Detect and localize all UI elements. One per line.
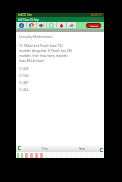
staticText: 536 <box>23 74 29 78</box>
staticText: Prev <box>42 147 48 151</box>
staticText: Everyday Mathematics <box>19 35 53 39</box>
button[interactable]: Bookmark <box>57 22 66 28</box>
staticText: 487 <box>23 81 29 85</box>
staticText: Self Class 15 Step <box>18 18 40 22</box>
button[interactable]: Menu <box>18 146 21 150</box>
staticText: 15. Mikail and Prachi have 732 marbles a… <box>19 44 75 63</box>
button[interactable]: Submit <box>86 23 101 28</box>
staticText: NOW SY <box>91 13 102 17</box>
button[interactable]: Prev <box>39 145 51 152</box>
button[interactable]: 487 <box>16 79 104 86</box>
staticText: Next <box>79 147 86 151</box>
button[interactable]: Info <box>17 22 26 28</box>
staticText: SelfCD Tchr <box>18 13 32 17</box>
staticText: Submit <box>90 24 98 27</box>
button[interactable]: 536 <box>16 72 104 79</box>
button[interactable]: 462 <box>16 86 104 93</box>
button[interactable]: 426 <box>16 65 104 72</box>
button[interactable]: Upload <box>67 22 76 28</box>
button[interactable]: Browser <box>27 22 36 28</box>
button[interactable]: Sound <box>37 22 46 28</box>
staticText: 462 <box>23 88 29 92</box>
button[interactable]: Grid <box>100 148 103 152</box>
staticText: 426 <box>23 67 29 71</box>
button[interactable]: Next <box>76 145 88 152</box>
staticText: Log Out <box>91 18 102 22</box>
button[interactable]: Refresh <box>47 22 56 28</box>
